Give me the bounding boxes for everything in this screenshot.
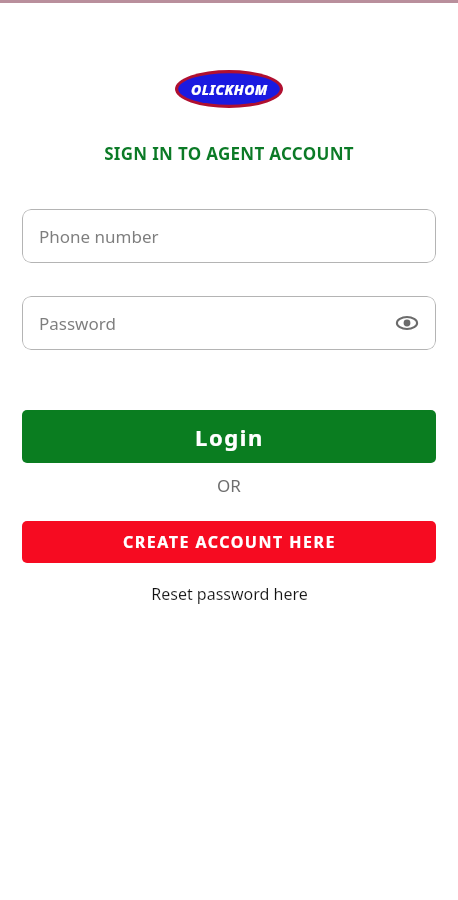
button[interactable]: Password [22, 296, 436, 350]
staticText: Reset password here [151, 583, 308, 605]
staticText: OLICKHOM [191, 80, 268, 99]
button[interactable]: Phone number [22, 209, 436, 263]
button[interactable]: Reset password here [143, 579, 316, 609]
staticText: SIGN IN TO AGENT ACCOUNT [0, 142, 458, 165]
staticText: Phone number [39, 225, 159, 248]
button[interactable]: Show password [392, 308, 422, 338]
staticText: Password [39, 312, 116, 335]
staticText: Login [195, 422, 264, 452]
staticText: OR [0, 474, 458, 497]
staticText: CREATE ACCOUNT HERE [123, 531, 336, 553]
button[interactable]: Login [22, 410, 436, 463]
button[interactable]: CREATE ACCOUNT HERE [22, 521, 436, 563]
